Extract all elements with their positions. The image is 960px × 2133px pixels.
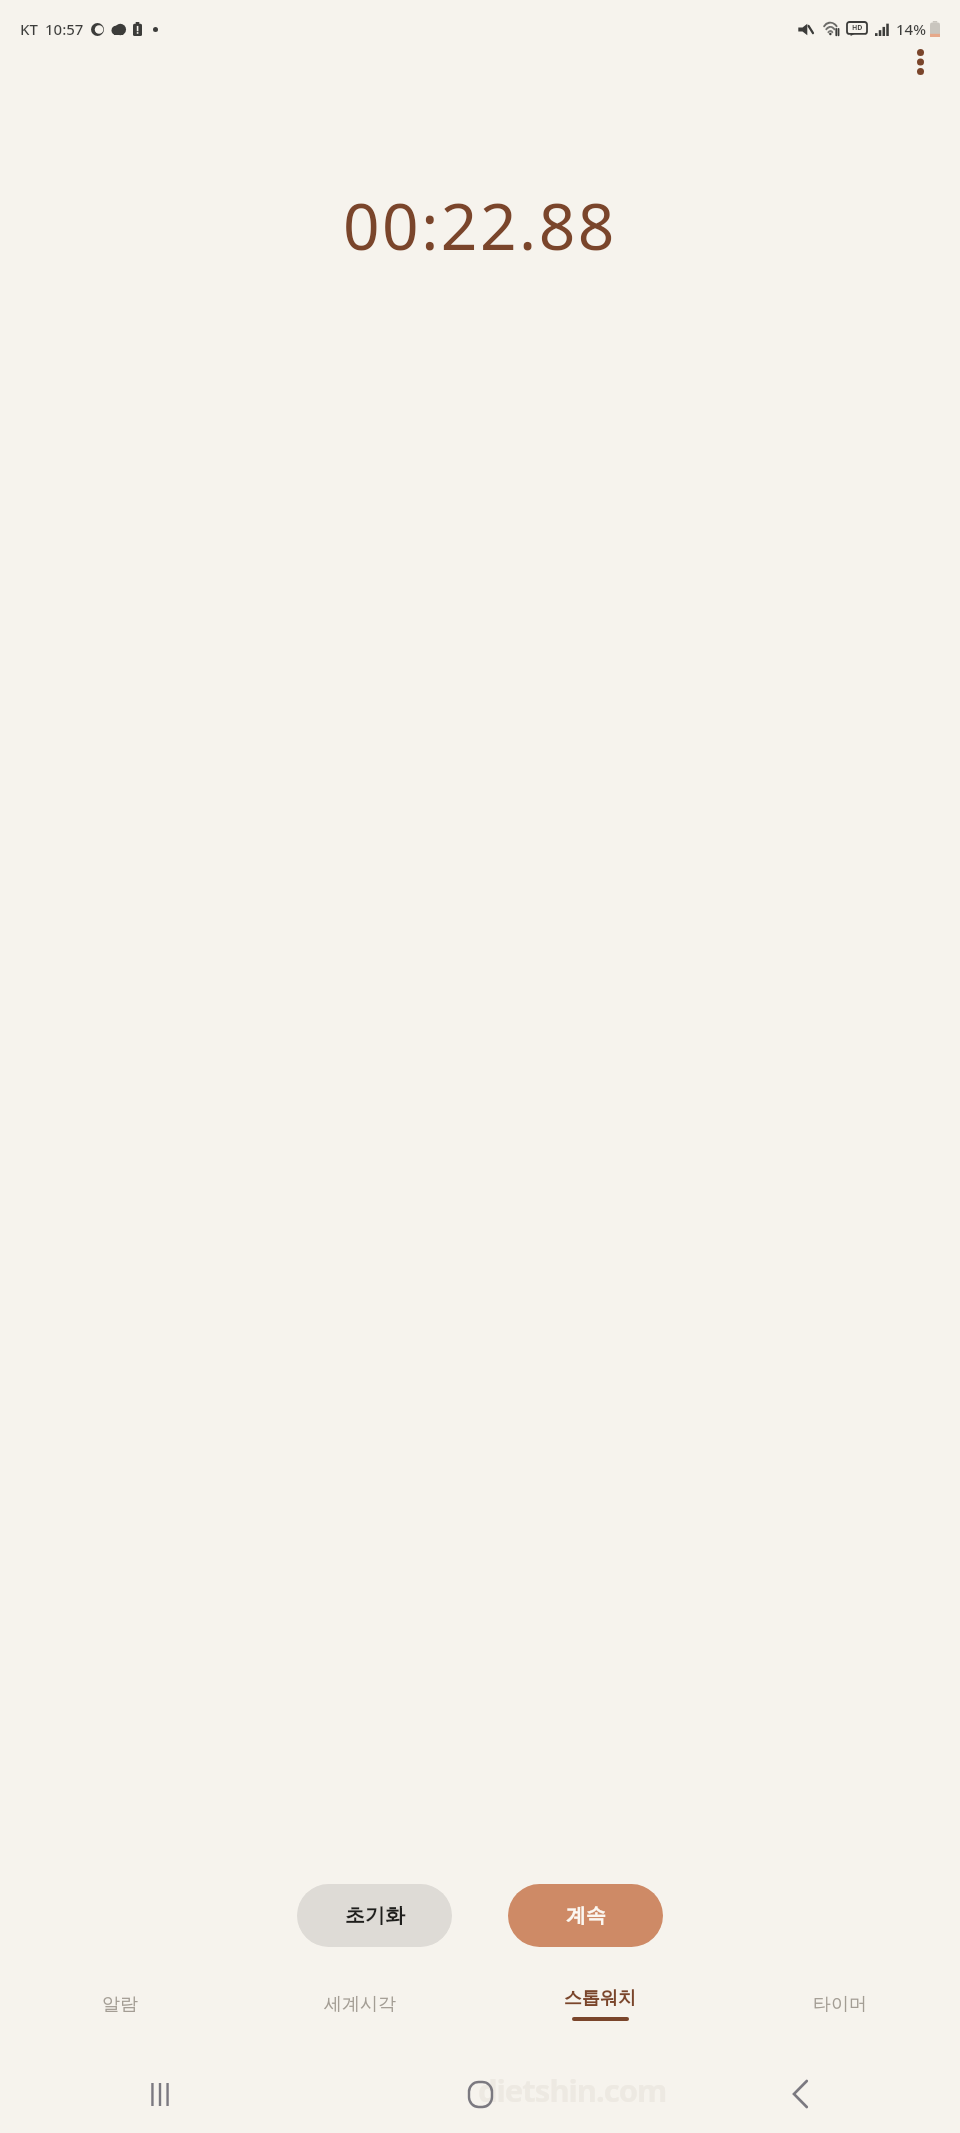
staticText: 계속 <box>566 1903 606 1928</box>
button[interactable]: 초기화 <box>297 1884 452 1947</box>
staticText: 초기화 <box>345 1903 405 1928</box>
staticText: 타이머 <box>813 1993 867 2016</box>
staticText: 14% <box>896 19 926 39</box>
staticText: 10:57 <box>45 19 84 39</box>
staticText: 스톱워치 <box>564 1987 636 2010</box>
button[interactable]: 알람 <box>0 1977 240 2031</box>
button[interactable]: 세계시각 <box>240 1977 480 2031</box>
staticText: 세계시각 <box>324 1993 396 2016</box>
staticText: 00:22.88 <box>343 182 617 269</box>
button[interactable]: 스톱워치 <box>480 1977 720 2031</box>
button[interactable]: More options <box>894 36 946 88</box>
staticText: KT <box>20 19 38 39</box>
button[interactable]: Recents <box>0 2055 320 2133</box>
staticText: dietshin.com <box>478 2069 667 2111</box>
staticText: HD <box>852 23 863 33</box>
button[interactable]: Home <box>320 2055 640 2133</box>
button[interactable]: 타이머 <box>720 1977 960 2031</box>
button[interactable]: 계속 <box>508 1884 663 1947</box>
staticText: 알람 <box>102 1993 138 2016</box>
button[interactable]: Back <box>640 2055 960 2133</box>
